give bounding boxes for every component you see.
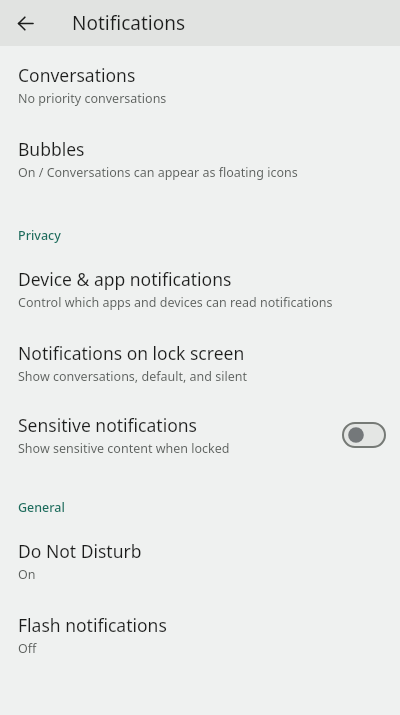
staticText: Privacy [18,227,61,244]
staticText: Device & app notifications [18,267,232,291]
button[interactable]: Bubbles [0,107,400,181]
staticText: Flash notifications [18,613,167,637]
staticText: No priority conversations [18,90,167,107]
staticText: On [18,566,36,583]
staticText: Bubbles [18,137,85,161]
button[interactable]: Sensitive notifications [0,385,400,457]
button[interactable]: Back [11,9,39,37]
button[interactable]: Notifications on lock screen [0,311,400,385]
staticText: Show conversations, default, and silent [18,368,247,385]
staticText: Notifications [72,10,186,36]
staticText: Sensitive notifications [18,413,197,437]
staticText: On / Conversations can appear as floatin… [18,164,298,181]
button[interactable]: Conversations [0,46,400,107]
staticText: Show sensitive content when locked [18,440,230,457]
staticText: Control which apps and devices can read … [18,294,333,311]
staticText: General [18,499,65,516]
staticText: Off [18,640,37,657]
button[interactable]: Do Not Disturb [0,520,400,583]
staticText: Notifications on lock screen [18,341,245,365]
button[interactable]: Flash notifications [0,583,400,657]
staticText: Do Not Disturb [18,539,142,563]
staticText: Conversations [18,63,136,87]
button[interactable]: Device & app notifications [0,248,400,311]
button[interactable]: Sensitive notifications toggle, off [342,422,386,448]
